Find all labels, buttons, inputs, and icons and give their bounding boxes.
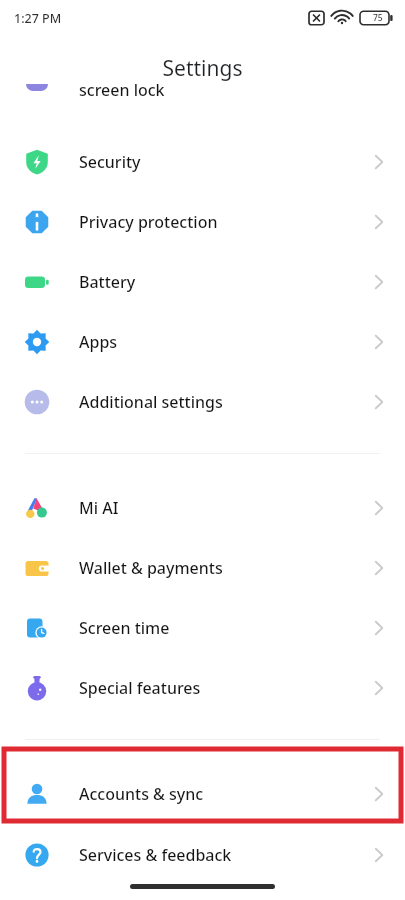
staticText: Battery [79,271,136,293]
staticText: screen lock [79,84,165,101]
button[interactable]: Accounts & sync [0,764,405,824]
button[interactable]: Security [0,132,405,192]
button[interactable]: Apps [0,312,405,372]
button[interactable]: Additional settings [0,372,405,432]
staticText: 75 [373,12,383,24]
staticText: Privacy protection [79,211,218,233]
staticText: Accounts & sync [79,783,204,805]
button[interactable]: Mi AI [0,478,405,538]
button[interactable]: Privacy protection [0,192,405,252]
staticText: Apps [79,331,118,353]
staticText: 1:27 PM [14,10,62,27]
staticText: Additional settings [79,391,223,413]
staticText: Special features [79,677,201,699]
button[interactable]: Special features [0,658,405,718]
button[interactable]: Battery [0,252,405,312]
button[interactable]: screen lock [0,84,405,116]
staticText: Security [79,151,141,173]
staticText: Screen time [79,617,170,639]
button[interactable]: Services & feedback [0,825,405,885]
button[interactable]: Wallet & payments [0,538,405,598]
staticText: Services & feedback [79,844,232,866]
staticText: Wallet & payments [79,557,223,579]
staticText: Settings [0,54,405,83]
staticText: Mi AI [79,497,119,519]
button[interactable]: Screen time [0,598,405,658]
